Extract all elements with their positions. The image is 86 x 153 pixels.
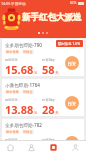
button[interactable]: 投资 — [65, 136, 79, 150]
staticText: % — [34, 70, 38, 75]
staticText: 新手专享 — [6, 130, 19, 134]
staticText: 投资期限 — [42, 98, 55, 102]
staticText: 15.68 — [5, 62, 34, 76]
button[interactable]: 全多期包即期-790 — [2, 39, 84, 76]
button[interactable]: Wealth — [21, 141, 42, 153]
staticText: 13.88 — [5, 102, 34, 116]
button[interactable]: 限时加息 1.5% — [56, 40, 83, 47]
staticText: 限时加息 1.5% — [58, 41, 81, 46]
staticText: 预期年化 — [5, 58, 18, 62]
staticText: 小微包即期-1764 — [5, 82, 40, 88]
button[interactable]: 投资 — [65, 96, 79, 110]
staticText: 预期年化 — [5, 138, 18, 142]
staticText: % — [34, 110, 38, 115]
staticText: 预期年化 — [5, 98, 18, 102]
button[interactable]: Home — [0, 141, 21, 153]
button[interactable]: 全多期包即期-782 — [2, 119, 84, 153]
staticText: 14:06 中国移动 — [1, 1, 26, 6]
button[interactable]: Profile — [64, 141, 86, 153]
button[interactable]: 投资 — [65, 56, 79, 70]
staticText: % — [34, 147, 38, 152]
staticText: 天 — [55, 70, 59, 75]
staticText: 可转让 — [23, 50, 33, 54]
staticText: 28 — [42, 102, 55, 116]
staticText: 新手专享 — [6, 50, 19, 54]
staticText: 投资 — [68, 61, 76, 66]
staticText: 新手红包大派送 — [22, 12, 82, 23]
staticText: 投资 — [68, 101, 76, 106]
staticText: 12.88 — [5, 142, 34, 153]
staticText: 全多期包即期-782 — [5, 122, 42, 128]
staticText: 30 — [42, 142, 55, 153]
staticText: 全多期包即期-790 — [5, 42, 42, 48]
staticText: 天 — [55, 147, 59, 152]
staticText: 可转让 — [23, 90, 33, 94]
staticText: 新手专享 — [6, 90, 19, 94]
staticText: 天 — [55, 110, 59, 115]
staticText: 可转让 — [23, 130, 33, 134]
staticText: 58 — [42, 62, 55, 76]
button[interactable]: Discover — [42, 141, 64, 153]
staticText: 投资期限 — [42, 138, 55, 142]
staticText: 投资 — [68, 141, 76, 146]
button[interactable]: 小微包即期-1764 — [2, 79, 84, 116]
staticText: 82% — [70, 1, 77, 5]
staticText: 投资期限 — [42, 58, 55, 62]
